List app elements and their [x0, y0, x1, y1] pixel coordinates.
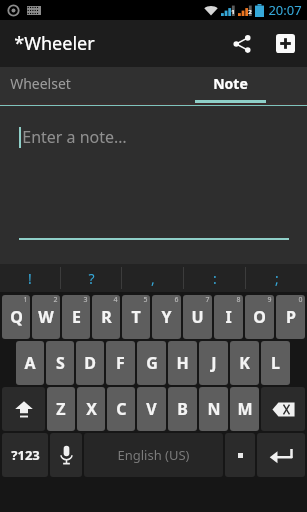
staticText: 8 — [236, 295, 241, 305]
button[interactable]: I — [214, 295, 243, 339]
staticText: R — [101, 306, 112, 328]
button[interactable]: ?123 — [2, 433, 48, 477]
button[interactable]: O — [245, 295, 274, 339]
staticText: P — [286, 306, 296, 328]
staticText: K — [239, 352, 250, 374]
button[interactable]: D — [76, 341, 104, 385]
staticText: 1 — [23, 295, 28, 305]
button[interactable]: English (US) — [84, 433, 223, 477]
staticText: U — [191, 306, 204, 328]
staticText: 2 — [53, 295, 58, 305]
button[interactable]: W — [32, 295, 60, 339]
staticText: A — [24, 352, 36, 374]
button[interactable]: Backspace — [261, 387, 305, 431]
button[interactable]: R — [92, 295, 120, 339]
button[interactable]: ; — [246, 264, 307, 292]
button[interactable]: H — [168, 341, 197, 385]
button[interactable]: Add — [263, 20, 307, 67]
staticText: B — [177, 398, 188, 420]
button[interactable]: A — [16, 341, 44, 385]
button[interactable]: B — [168, 387, 197, 431]
staticText: : — [213, 269, 217, 288]
button[interactable]: J — [199, 341, 228, 385]
staticText: Wheelset — [10, 74, 71, 93]
button[interactable]: K — [230, 341, 259, 385]
button[interactable]: Share — [221, 20, 263, 67]
button[interactable]: F — [106, 341, 135, 385]
staticText: 1 — [231, 8, 235, 16]
button[interactable]: Z — [47, 387, 75, 431]
button[interactable]: Shift — [2, 387, 45, 431]
staticText: ; — [275, 269, 279, 288]
staticText: ! — [28, 269, 32, 288]
staticText: T — [131, 306, 141, 328]
staticText: O — [253, 306, 266, 328]
button[interactable]: U — [183, 295, 212, 339]
button[interactable]: Y — [152, 295, 181, 339]
staticText: D — [84, 352, 96, 374]
staticText: C — [116, 398, 127, 420]
staticText: Y — [161, 306, 172, 328]
button[interactable]: ! — [0, 264, 60, 292]
button[interactable]: P — [276, 295, 305, 339]
staticText: Enter a note… — [22, 126, 127, 148]
staticText: E — [72, 306, 81, 328]
button[interactable]: G — [137, 341, 166, 385]
button[interactable]: T — [122, 295, 150, 339]
staticText: N — [207, 398, 221, 420]
staticText: ? — [88, 269, 95, 288]
button[interactable] — [225, 433, 255, 477]
staticText: 4 — [113, 295, 118, 305]
button[interactable]: Enter — [257, 433, 305, 477]
button[interactable]: X — [77, 387, 105, 431]
staticText: G — [146, 352, 158, 374]
staticText: V — [146, 398, 157, 420]
staticText: 20:07 — [268, 1, 302, 19]
staticText: 6 — [174, 295, 179, 305]
staticText: 5 — [143, 295, 148, 305]
button[interactable]: C — [107, 387, 135, 431]
staticText: 9 — [267, 295, 272, 305]
staticText: Q — [10, 306, 23, 328]
staticText: F — [116, 352, 125, 374]
staticText: I — [225, 306, 232, 328]
button[interactable]: E — [62, 295, 90, 339]
button[interactable]: ? — [61, 264, 121, 292]
staticText: 7 — [205, 295, 210, 305]
button[interactable]: M — [230, 387, 259, 431]
staticText: X — [86, 398, 97, 420]
staticText: Z — [56, 398, 66, 420]
staticText: , — [151, 269, 155, 288]
staticText: 2 — [248, 8, 252, 16]
button[interactable]: : — [184, 264, 245, 292]
button[interactable]: Wheelset — [0, 67, 153, 100]
staticText: English (US) — [117, 446, 190, 464]
staticText: 0 — [298, 295, 303, 305]
staticText: ?123 — [11, 446, 40, 464]
button[interactable]: L — [261, 341, 290, 385]
button[interactable]: S — [46, 341, 74, 385]
button[interactable]: N — [199, 387, 228, 431]
staticText: L — [271, 352, 280, 374]
button[interactable]: Q — [2, 295, 30, 339]
staticText: *Wheeler — [14, 31, 95, 56]
staticText: H — [176, 352, 189, 374]
staticText: 3 — [83, 295, 88, 305]
button[interactable]: Note — [153, 67, 307, 100]
staticText: M — [237, 398, 253, 420]
button[interactable]: , — [122, 264, 183, 292]
button[interactable]: V — [137, 387, 166, 431]
staticText: J — [211, 352, 217, 374]
staticText: Note — [213, 74, 248, 93]
button[interactable]: Voice input — [50, 433, 82, 477]
staticText: W — [38, 306, 54, 328]
staticText: S — [56, 352, 65, 374]
